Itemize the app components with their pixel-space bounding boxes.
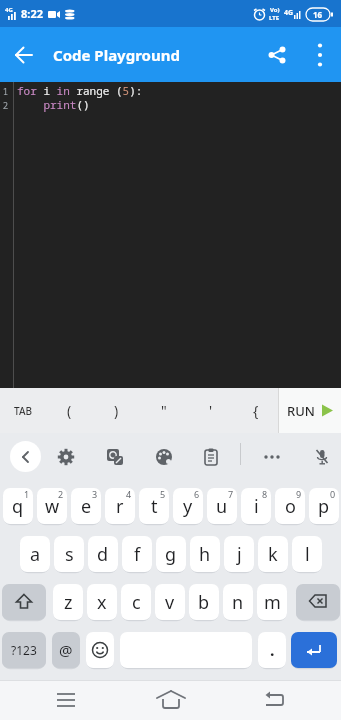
button[interactable]: e bbox=[71, 488, 101, 524]
button[interactable]: f bbox=[122, 536, 152, 572]
button[interactable]: b bbox=[189, 584, 219, 620]
button[interactable]: " bbox=[140, 388, 187, 433]
staticText: m bbox=[264, 590, 281, 615]
staticText: 7 bbox=[228, 488, 234, 500]
staticText: f bbox=[134, 542, 141, 567]
staticText: g bbox=[165, 542, 177, 567]
button[interactable]: @ bbox=[52, 632, 80, 668]
staticText: j bbox=[237, 542, 242, 567]
button[interactable]: j bbox=[224, 536, 254, 572]
staticText: 2 bbox=[58, 488, 64, 500]
staticText: { bbox=[253, 401, 259, 420]
staticText: @ bbox=[59, 640, 73, 660]
staticText: o bbox=[285, 494, 296, 519]
staticText: 1 bbox=[24, 488, 30, 500]
button[interactable] bbox=[255, 33, 299, 77]
button[interactable] bbox=[260, 445, 284, 469]
staticText: v bbox=[165, 590, 175, 615]
staticText: 16 bbox=[313, 9, 323, 20]
button[interactable] bbox=[310, 445, 334, 469]
button[interactable] bbox=[86, 632, 114, 668]
staticText: b bbox=[198, 590, 210, 615]
button[interactable] bbox=[10, 441, 41, 472]
staticText: n bbox=[232, 590, 244, 615]
button[interactable]: k bbox=[258, 536, 288, 572]
staticText: l bbox=[305, 542, 310, 567]
button[interactable]: TAB bbox=[0, 388, 46, 433]
staticText: y bbox=[183, 494, 193, 519]
button[interactable]: { bbox=[234, 388, 278, 433]
staticText: u bbox=[216, 494, 228, 519]
staticText: 8 bbox=[262, 488, 268, 500]
button[interactable]: a bbox=[20, 536, 50, 572]
staticText: TAB bbox=[14, 404, 33, 418]
button[interactable] bbox=[151, 680, 191, 720]
button[interactable]: c bbox=[121, 584, 151, 620]
button[interactable] bbox=[54, 445, 78, 469]
button[interactable]: v bbox=[155, 584, 185, 620]
staticText: 4G bbox=[284, 8, 294, 18]
staticText: 4G bbox=[5, 6, 13, 14]
button[interactable] bbox=[152, 445, 176, 469]
button[interactable]: ?123 bbox=[2, 632, 46, 668]
staticText: ) bbox=[114, 401, 119, 420]
staticText: " bbox=[161, 401, 167, 420]
staticText: 6 bbox=[194, 488, 200, 500]
button[interactable]: ' bbox=[187, 388, 234, 433]
staticText: h bbox=[199, 542, 211, 567]
staticText: z bbox=[64, 590, 73, 615]
button[interactable]: q bbox=[3, 488, 33, 524]
staticText: q bbox=[12, 494, 24, 519]
staticText: 1 2 bbox=[0, 85, 11, 112]
button[interactable] bbox=[199, 445, 223, 469]
button[interactable]: p bbox=[309, 488, 339, 524]
button[interactable] bbox=[103, 445, 127, 469]
button[interactable]: y bbox=[173, 488, 203, 524]
button[interactable]: g bbox=[156, 536, 186, 572]
button[interactable]: s bbox=[54, 536, 84, 572]
staticText: . bbox=[270, 639, 275, 661]
button[interactable]: d bbox=[88, 536, 118, 572]
button[interactable] bbox=[46, 680, 86, 720]
staticText: for i in range (5): print() bbox=[17, 83, 143, 112]
button[interactable]: ( bbox=[46, 388, 93, 433]
button[interactable]: o bbox=[275, 488, 305, 524]
button[interactable]: i bbox=[241, 488, 271, 524]
staticText: 0 bbox=[330, 488, 336, 500]
button[interactable]: r bbox=[105, 488, 135, 524]
button[interactable]: l bbox=[292, 536, 322, 572]
button[interactable]: t bbox=[139, 488, 169, 524]
staticText: ?123 bbox=[11, 642, 37, 658]
button[interactable]: h bbox=[190, 536, 220, 572]
button[interactable] bbox=[2, 584, 46, 620]
button[interactable] bbox=[0, 31, 48, 79]
staticText: e bbox=[81, 494, 92, 519]
button[interactable]: m bbox=[257, 584, 287, 620]
button[interactable]: RUN bbox=[279, 388, 341, 433]
staticText: t bbox=[151, 494, 158, 519]
button[interactable] bbox=[299, 34, 341, 76]
staticText: r bbox=[116, 494, 124, 519]
button[interactable]: u bbox=[207, 488, 237, 524]
staticText: k bbox=[268, 542, 278, 567]
staticText: p bbox=[318, 494, 330, 519]
staticText: Vo) bbox=[270, 6, 280, 14]
button[interactable]: x bbox=[87, 584, 117, 620]
staticText: RUN bbox=[287, 402, 315, 420]
staticText: ( bbox=[67, 401, 72, 420]
staticText: s bbox=[65, 542, 74, 567]
button[interactable] bbox=[255, 680, 295, 720]
button[interactable]: z bbox=[53, 584, 83, 620]
button[interactable]: n bbox=[223, 584, 253, 620]
button[interactable]: . bbox=[258, 632, 286, 668]
staticText: x bbox=[97, 590, 107, 615]
staticText: ' bbox=[209, 401, 213, 420]
staticText: Code Playground bbox=[53, 45, 180, 65]
button[interactable] bbox=[296, 584, 340, 620]
button[interactable]: ) bbox=[93, 388, 140, 433]
button[interactable]: w bbox=[37, 488, 67, 524]
button[interactable] bbox=[291, 632, 337, 668]
staticText: w bbox=[45, 494, 60, 519]
staticText: 8:22 bbox=[21, 6, 43, 21]
